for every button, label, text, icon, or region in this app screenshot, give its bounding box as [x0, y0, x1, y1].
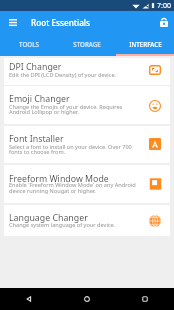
staticText: Select a font to install on your device.… [9, 143, 132, 151]
staticText: Font Installer [9, 133, 64, 145]
staticText: Emoji Changer [9, 93, 70, 105]
staticText: TOOLS [19, 40, 39, 48]
staticText: Freeform Window Mode [9, 173, 109, 185]
button[interactable]: Back [0, 288, 58, 310]
staticText: STORAGE [73, 40, 101, 48]
staticText: fonts to choose from. [9, 148, 66, 156]
button[interactable]: Home [58, 288, 116, 310]
button[interactable]: INTERFACE [116, 33, 174, 54]
staticText: Language Changer [9, 212, 88, 224]
button[interactable]: STORAGE [58, 33, 116, 54]
staticText: Root Essentials [31, 17, 91, 28]
button[interactable]: Navigation menu [3, 14, 20, 30]
button[interactable]: DPI Changer [4, 58, 170, 85]
staticText: 7:00 [157, 1, 171, 11]
staticText: Enable 'Freeform Window Mode' on any And… [9, 181, 136, 189]
staticText: Edit the DPI (LCD Density) of your devic… [9, 71, 117, 79]
button[interactable]: Recent apps [116, 288, 174, 310]
button[interactable]: Emoji Changer [4, 86, 170, 124]
button[interactable]: Font Installer [4, 126, 170, 163]
staticText: Android Lollipop or higher. [9, 108, 79, 116]
staticText: INTERFACE [129, 40, 162, 48]
button[interactable]: Lock [155, 14, 172, 30]
staticText: DPI Changer [9, 61, 62, 73]
button[interactable]: Language Changer [4, 205, 170, 236]
staticText: Change system language of your device. [9, 221, 116, 229]
staticText: Change the Emojis of your device. Requir… [9, 103, 123, 111]
staticText: device running Nougat or higher. [9, 187, 96, 195]
button[interactable]: TOOLS [0, 33, 58, 54]
button[interactable]: Freeform Window Mode [4, 165, 170, 203]
